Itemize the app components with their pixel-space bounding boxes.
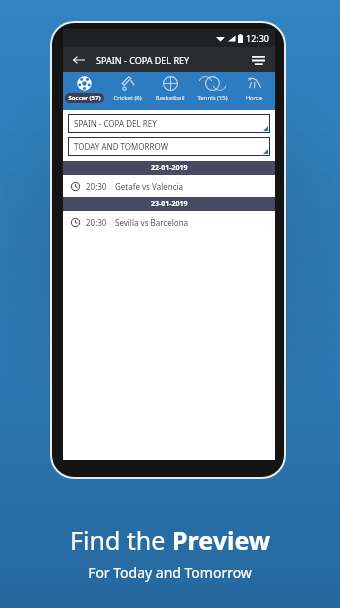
button[interactable]: Tennis (15) — [191, 72, 233, 110]
staticText: Soccer (57) — [68, 94, 101, 102]
button[interactable]: Horce Racing — [233, 72, 275, 110]
staticText: 12:30 — [246, 32, 270, 44]
button[interactable]: Filter — [248, 50, 268, 70]
button[interactable]: Cricket (6) — [106, 72, 149, 110]
staticText: Sevilla vs Barcelona — [115, 217, 189, 228]
staticText: 20:30 — [86, 181, 107, 192]
staticText: 20:30 — [86, 217, 107, 228]
staticText: Preview — [172, 523, 271, 557]
staticText: Tennis (15) — [197, 94, 228, 102]
button[interactable]: SPAIN - COPA DEL REY — [68, 114, 270, 133]
staticText: Horce Racing — [236, 94, 272, 102]
button[interactable]: Back — [70, 51, 88, 69]
staticText: Getafe vs Valencia — [115, 181, 184, 192]
staticText: Cricket (6) — [113, 94, 142, 102]
staticText: SPAIN - COPA DEL REY — [96, 54, 190, 66]
button[interactable]: 20:30 — [63, 175, 275, 197]
staticText: For Today and Tomorrow — [88, 563, 252, 582]
button[interactable]: Soccer (57) — [63, 72, 106, 110]
staticText: 22-01-2019 — [151, 163, 188, 173]
staticText: TODAY AND TOMORROW — [74, 141, 169, 152]
staticText: Basketball (86) — [152, 94, 188, 102]
button[interactable]: TODAY AND TOMORROW — [68, 137, 270, 156]
button[interactable]: Basketball (86) — [149, 72, 191, 110]
staticText: 23-01-2019 — [151, 199, 188, 209]
button[interactable]: 20:30 — [63, 211, 275, 233]
staticText: Find the — [70, 523, 172, 557]
staticText: SPAIN - COPA DEL REY — [74, 118, 157, 129]
